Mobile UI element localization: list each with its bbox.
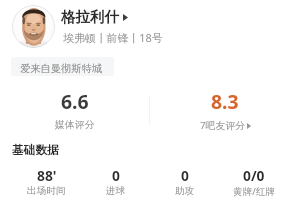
button[interactable]: 6.6 xyxy=(0,88,150,131)
button[interactable]: 8.3 xyxy=(150,88,300,132)
staticText: 爱来自曼彻斯特城 xyxy=(20,62,103,75)
staticText: 黄牌/红牌 xyxy=(233,185,275,198)
button[interactable]: 0/0 xyxy=(219,166,288,198)
staticText: 媒体评分 xyxy=(55,119,95,131)
button[interactable]: 88' xyxy=(12,166,81,197)
staticText: 0 xyxy=(112,166,120,185)
staticText: 8.3 xyxy=(211,88,239,114)
staticText: 0/0 xyxy=(243,166,265,185)
staticText: 助攻 xyxy=(175,185,195,197)
staticText: 基础数据 xyxy=(12,143,59,158)
staticText: 0 xyxy=(181,166,189,185)
staticText: 6.6 xyxy=(61,88,89,114)
button[interactable]: 0 xyxy=(81,166,150,197)
staticText: 埃弗顿丨前锋丨18号 xyxy=(63,30,163,45)
button[interactable]: 爱来自曼彻斯特城 xyxy=(11,57,114,76)
staticText: 格拉利什 xyxy=(61,8,119,26)
button[interactable]: Player avatar xyxy=(12,5,55,48)
staticText: 7吧友评分 xyxy=(200,119,245,132)
button[interactable]: 格拉利什 xyxy=(61,8,128,26)
button[interactable]: 0 xyxy=(150,166,219,197)
staticText: 88' xyxy=(37,166,57,185)
staticText: 出场时间 xyxy=(27,185,66,197)
staticText: 进球 xyxy=(106,185,126,197)
